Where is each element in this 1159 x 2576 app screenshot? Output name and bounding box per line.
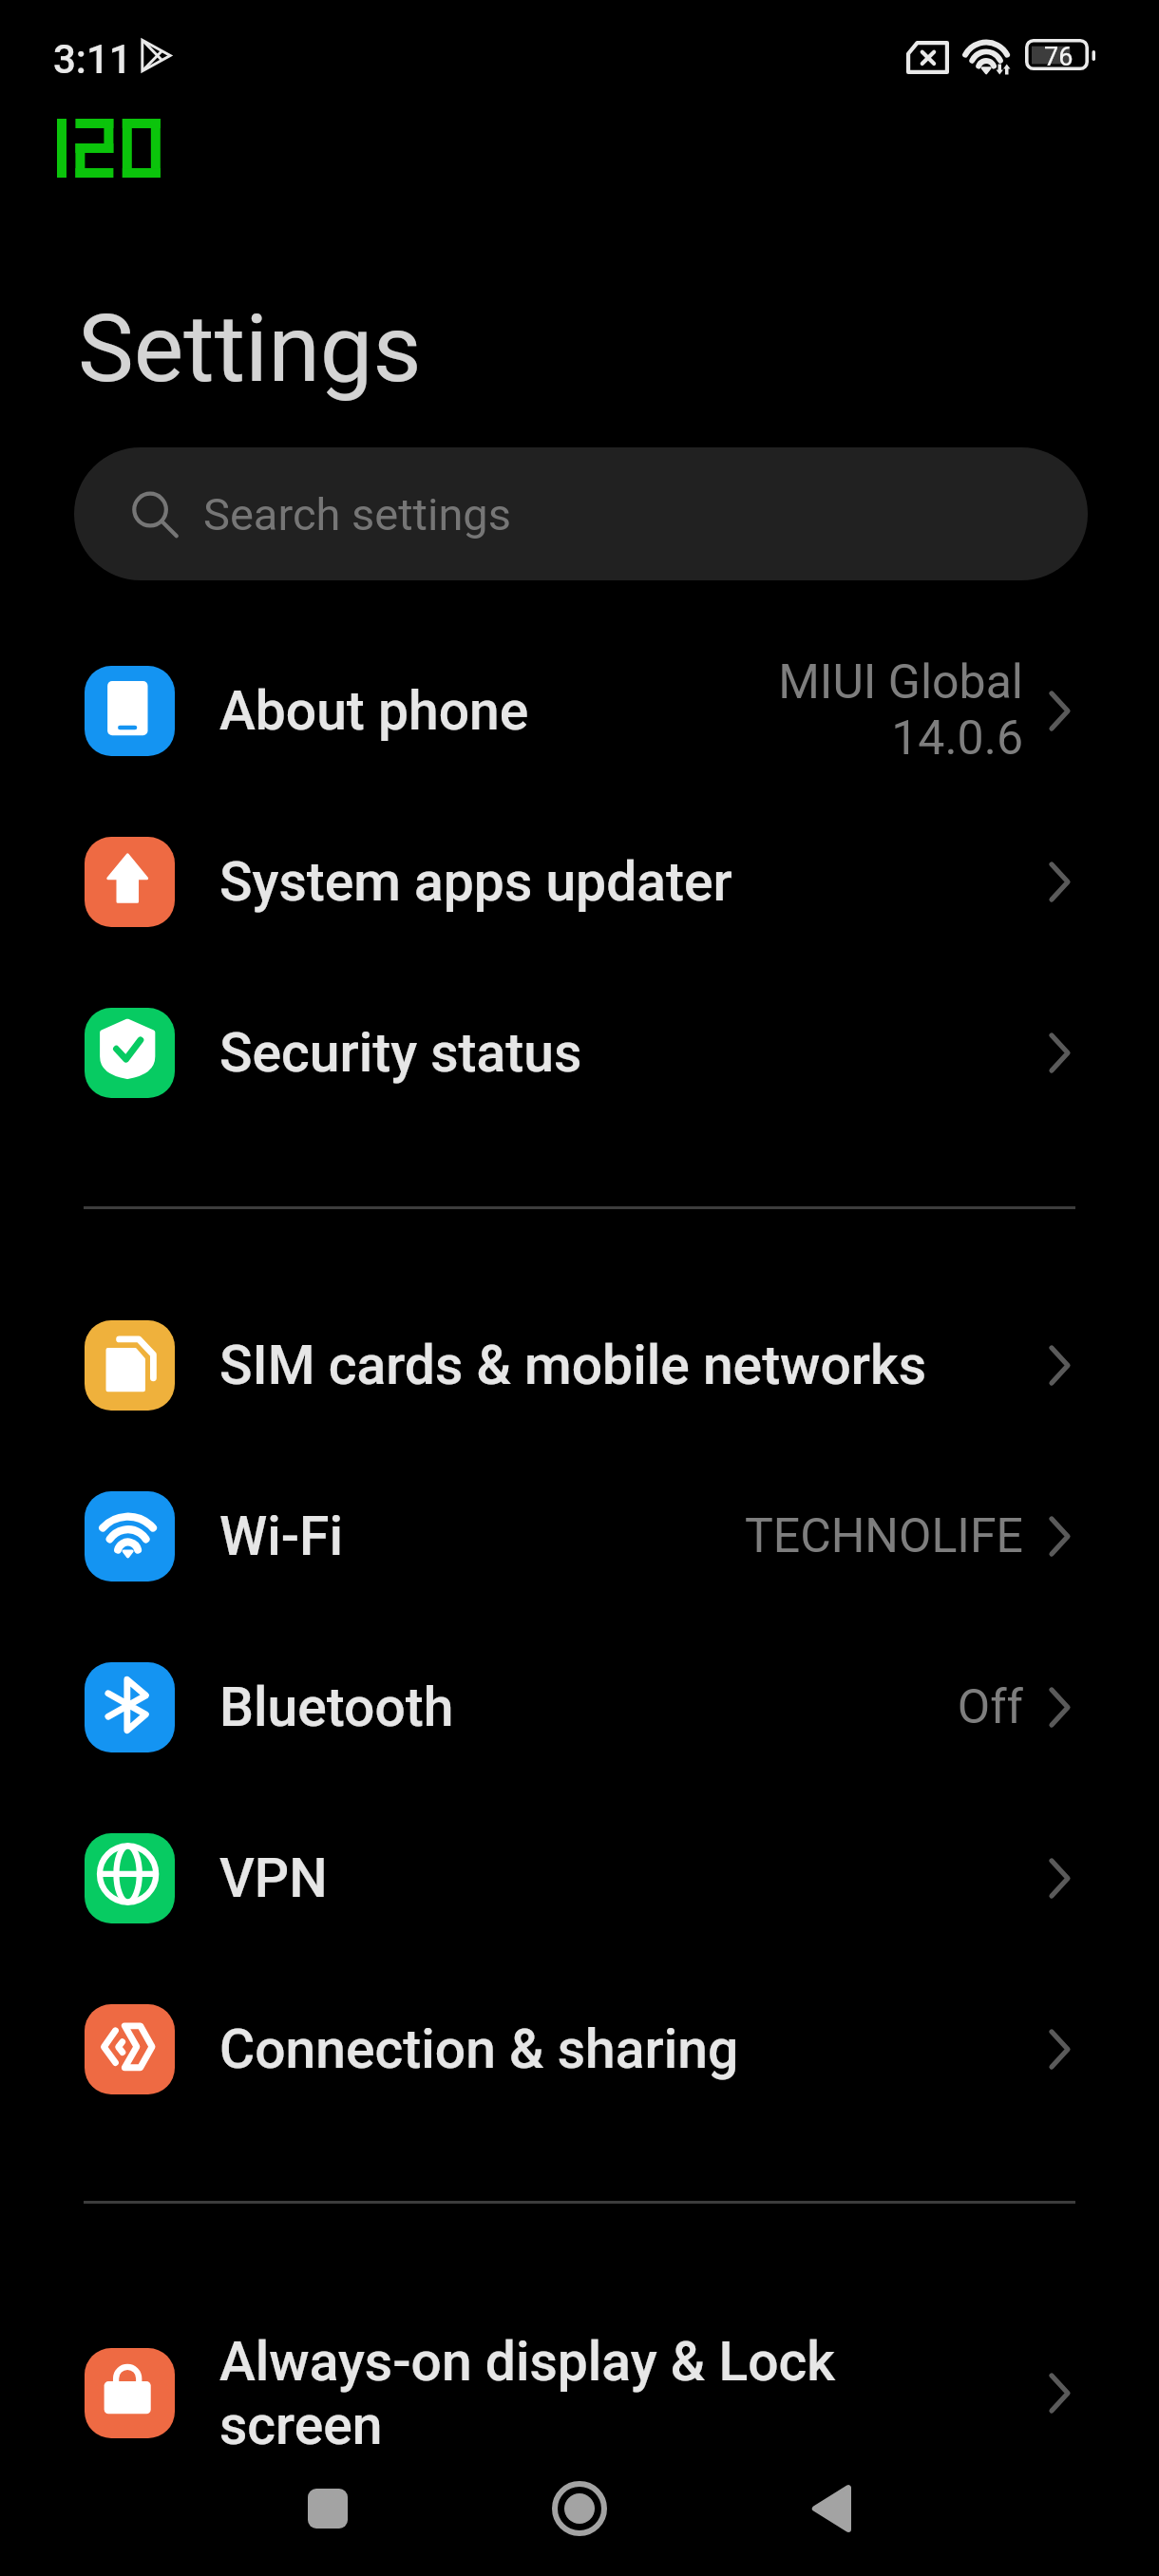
staticText: SIM cards & mobile networks [219, 1334, 1052, 1397]
staticText: Always-on display & Lock screen [219, 2330, 1052, 2457]
button[interactable]: VPN [0, 1792, 1159, 1963]
staticText: Security status [219, 1021, 1052, 1085]
staticText: Off [957, 1679, 1023, 1735]
staticText: 76 [1044, 42, 1073, 72]
button[interactable]: SIM cards & mobile networks [0, 1279, 1159, 1450]
button[interactable]: Connection & sharing [0, 1963, 1159, 2134]
staticText: 3:11 [53, 36, 132, 83]
staticText: Wi-Fi [219, 1505, 744, 1568]
staticText: Search settings [203, 488, 511, 540]
staticText: VPN [219, 1847, 1052, 1910]
button[interactable]: About phone [0, 625, 1159, 796]
staticText: MIUI Global 14.0.6 [778, 654, 1023, 767]
staticText: About phone [219, 679, 778, 743]
staticText: TECHNOLIFE [744, 1508, 1023, 1564]
staticText: Bluetooth [219, 1676, 957, 1739]
button[interactable]: Back [780, 2456, 884, 2561]
staticText: Settings [78, 294, 422, 404]
staticText: System apps updater [219, 850, 1052, 914]
button[interactable]: System apps updater [0, 796, 1159, 967]
button[interactable]: Security status [0, 967, 1159, 1138]
button[interactable]: Wi-Fi [0, 1450, 1159, 1621]
button[interactable]: Search settings [74, 447, 1088, 580]
button[interactable]: Bluetooth [0, 1621, 1159, 1792]
button[interactable]: Always-on display & Lock screen [0, 2267, 1159, 2519]
button[interactable]: Recent apps [275, 2456, 380, 2561]
button[interactable]: Home [527, 2456, 632, 2561]
staticText: Connection & sharing [219, 2017, 1052, 2081]
